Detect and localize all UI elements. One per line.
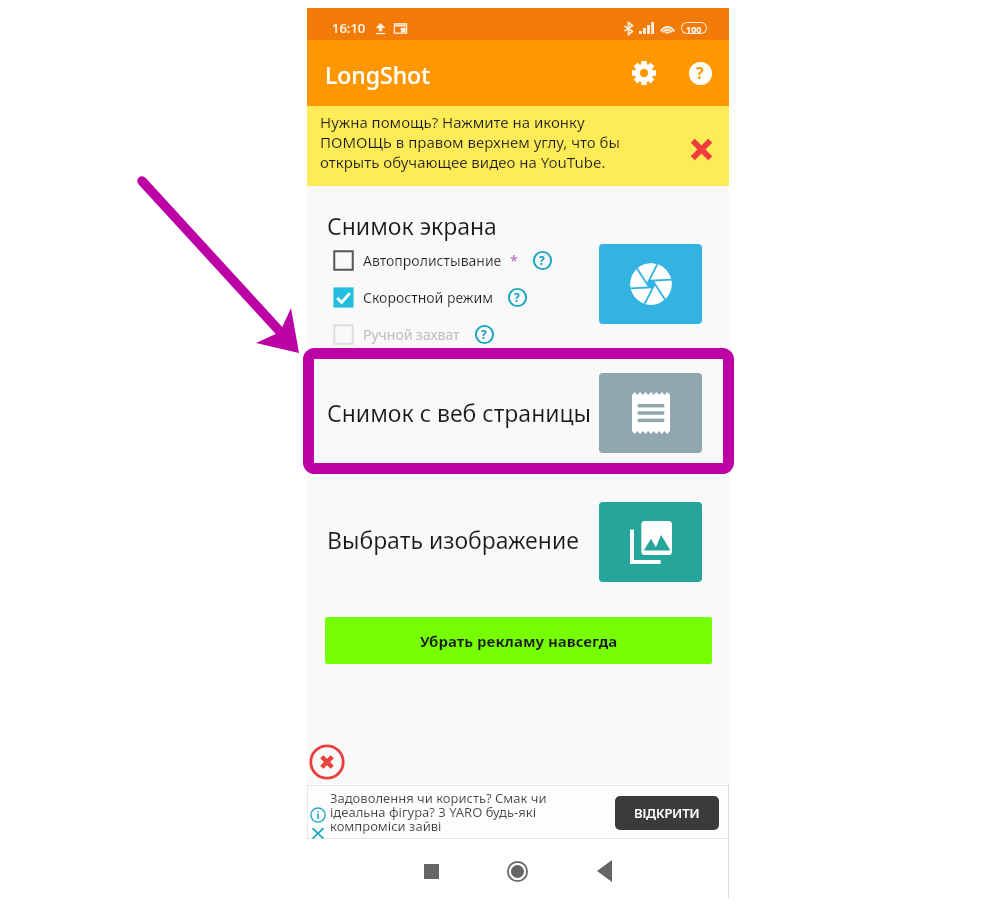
staticText: *: [510, 251, 518, 270]
staticText: 100: [686, 23, 702, 33]
staticText: Скоростной режим: [363, 288, 493, 307]
button[interactable]: Settings: [624, 53, 664, 93]
button[interactable]: Close ad: [309, 744, 345, 780]
button[interactable]: Скоростной режим: [333, 281, 530, 313]
button[interactable]: Take screenshot: [599, 244, 702, 324]
staticText: Снимок с веб страницы: [327, 397, 592, 428]
staticText: Автопролистывание: [363, 251, 502, 270]
staticText: ?: [696, 62, 704, 84]
staticText: Ручной захват: [363, 325, 460, 344]
button[interactable]: Info: [504, 284, 530, 310]
button[interactable]: Back: [586, 853, 622, 889]
staticText: Задоволення чи користь? Смак чи ідеальна…: [330, 789, 547, 835]
staticText: ?: [539, 252, 545, 268]
staticText: Убрать рекламу навсегда: [420, 631, 618, 651]
staticText: ?: [481, 326, 487, 342]
staticText: 16:10: [332, 19, 366, 37]
staticText: Выбрать изображение: [327, 524, 579, 555]
button[interactable]: Ad info: [310, 807, 326, 823]
button[interactable]: Выбрать изображение: [307, 490, 729, 590]
staticText: Снимок экрана: [327, 210, 497, 241]
button[interactable]: Close ad: [310, 825, 326, 841]
button[interactable]: Recent apps: [413, 853, 449, 889]
staticText: ВІДКРИТИ: [634, 804, 700, 822]
staticText: Нужна помощь? Нажмите на иконку ПОМОЩЬ в…: [320, 112, 620, 172]
button[interactable]: Info: [471, 321, 497, 347]
button[interactable]: Close hint: [683, 131, 719, 167]
button[interactable]: Info: [529, 247, 555, 273]
button[interactable]: Убрать рекламу навсегда: [325, 617, 712, 664]
staticText: LongShot: [325, 59, 430, 90]
button[interactable]: ВІДКРИТИ: [615, 796, 719, 830]
button[interactable]: Автопролистывание: [333, 244, 555, 276]
button[interactable]: Home: [499, 853, 535, 889]
button[interactable]: Ручной захват: [333, 318, 497, 350]
button[interactable]: Снимок с веб страницы: [307, 360, 729, 480]
button[interactable]: Help: [680, 53, 720, 93]
staticText: ?: [514, 289, 520, 305]
